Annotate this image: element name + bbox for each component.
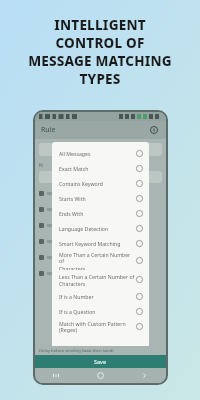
button[interactable]: Ends With	[52, 206, 149, 221]
staticText: If is a Question	[59, 308, 96, 315]
staticText: Delay before sending (wait then send)	[39, 348, 114, 354]
button[interactable]: More Than a Certain Number of	[52, 251, 149, 270]
button[interactable]: Home	[78, 368, 122, 383]
button[interactable]: If is a Question	[52, 304, 149, 319]
button[interactable]: Starts With	[52, 191, 149, 206]
staticText: MESSAGE MATCHING	[28, 52, 172, 70]
button[interactable]: Less Than a Certain Number of	[52, 270, 149, 289]
button[interactable]: Smart Keyword Matching	[52, 236, 149, 251]
staticText: N	[39, 162, 43, 169]
staticText: Smart Keyword Matching	[59, 240, 121, 247]
button[interactable]: All Messages	[52, 146, 149, 161]
staticText: Characters	[59, 265, 86, 270]
button[interactable]: Back	[122, 368, 166, 383]
button[interactable]: Exact Match	[52, 161, 149, 176]
staticText: Characters	[59, 280, 86, 287]
button[interactable]: Info	[148, 124, 160, 136]
staticText: Exact Match	[59, 165, 89, 172]
staticText: CONTROL OF	[55, 34, 145, 52]
staticText: More Than a Certain Number of	[59, 251, 136, 265]
staticText: All Messages	[59, 150, 91, 157]
staticText: Starts With	[59, 195, 86, 202]
button[interactable]: Contains Keyword	[52, 176, 149, 191]
staticText: Contains Keyword	[59, 180, 103, 187]
staticText: Language Detection	[59, 225, 109, 232]
staticText: Match with Custom Pattern (Regex)	[59, 320, 136, 334]
staticText: Ends With	[59, 210, 84, 217]
staticText: TYPES	[79, 70, 121, 88]
button[interactable]: Recents	[35, 368, 78, 383]
staticText: Rule	[41, 125, 56, 135]
button[interactable]: Language Detection	[52, 221, 149, 236]
staticText: If is a Number	[59, 293, 94, 300]
button[interactable]: Save	[35, 355, 166, 368]
button[interactable]: If is a Number	[52, 289, 149, 304]
staticText: Less Than a Certain Number of	[59, 273, 135, 280]
button[interactable]: Match with Custom Pattern (Regex)	[52, 319, 149, 334]
staticText: INTELLIGENT	[54, 16, 146, 34]
staticText: Save	[94, 358, 107, 365]
